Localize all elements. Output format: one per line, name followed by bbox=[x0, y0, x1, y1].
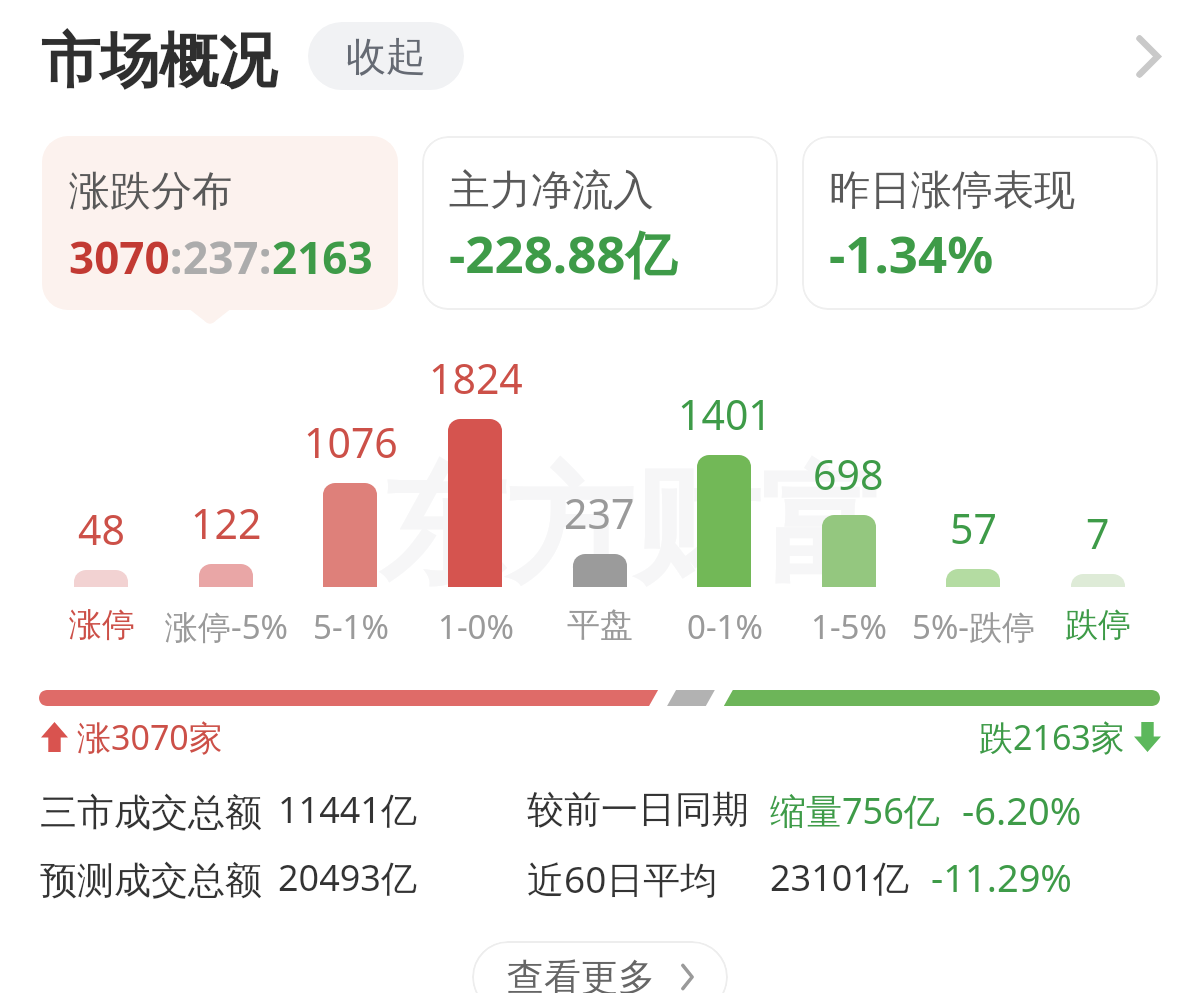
staticText: 涨停 bbox=[69, 604, 135, 646]
button[interactable] bbox=[1035, 350, 1160, 642]
staticText: 3070 bbox=[69, 227, 170, 287]
staticText: 涨3070家 bbox=[77, 714, 223, 760]
staticText: 近60日平均 bbox=[527, 853, 718, 904]
staticText: 主力净流入 bbox=[449, 165, 654, 217]
staticText: 48 bbox=[78, 501, 125, 557]
button[interactable]: 收起 bbox=[308, 22, 464, 90]
button[interactable] bbox=[662, 350, 787, 642]
button[interactable]: Collapse section bbox=[1108, 21, 1188, 101]
staticText: -1.34% bbox=[829, 218, 994, 287]
button[interactable]: 涨跌分布 bbox=[42, 136, 398, 310]
staticText: 2163 bbox=[272, 227, 373, 287]
staticText: : bbox=[170, 227, 183, 287]
staticText: -6.20% bbox=[962, 784, 1082, 836]
staticText: 较前一日同期 bbox=[527, 786, 749, 833]
button[interactable] bbox=[164, 350, 289, 642]
staticText: 涨跌分布 bbox=[69, 166, 233, 218]
staticText: 东方财富 bbox=[379, 448, 887, 598]
button[interactable]: 主力净流入 bbox=[422, 136, 778, 310]
staticText: 三市成交总额 bbox=[40, 789, 262, 836]
staticText: -11.29% bbox=[931, 851, 1072, 903]
button[interactable]: 查看更多 bbox=[472, 941, 728, 993]
button[interactable]: Advance decline ratio bbox=[39, 690, 1160, 706]
staticText: 1076 bbox=[304, 414, 398, 470]
staticText: 20493亿 bbox=[278, 853, 417, 902]
button[interactable] bbox=[413, 350, 538, 642]
staticText: 跌停 bbox=[1065, 604, 1131, 646]
button[interactable] bbox=[39, 350, 164, 642]
staticText: 698 bbox=[813, 446, 884, 502]
staticText: 237 bbox=[183, 227, 259, 287]
staticText: 7 bbox=[1086, 505, 1110, 561]
staticText: : bbox=[259, 227, 272, 287]
staticText: 跌2163家 bbox=[979, 714, 1125, 760]
button[interactable] bbox=[786, 350, 911, 642]
staticText: 平盘 bbox=[567, 604, 633, 646]
button[interactable]: 昨日涨停表现 bbox=[802, 136, 1158, 310]
button[interactable] bbox=[911, 350, 1036, 642]
staticText: 1-0% bbox=[438, 604, 514, 649]
staticText: 5-1% bbox=[313, 604, 389, 649]
staticText: 1824 bbox=[429, 350, 523, 406]
staticText: 预测成交总额 bbox=[40, 857, 262, 904]
staticText: 23101亿 bbox=[770, 853, 909, 902]
staticText: 1401 bbox=[678, 386, 772, 442]
staticText: 缩量756亿 bbox=[770, 786, 940, 835]
staticText: 237 bbox=[564, 485, 635, 541]
button[interactable]: 三市成交总额 bbox=[40, 789, 262, 836]
staticText: 57 bbox=[950, 500, 997, 556]
button[interactable]: 近60日平均 bbox=[527, 853, 718, 904]
staticText: 昨日涨停表现 bbox=[829, 165, 1075, 217]
staticText: -228.88亿 bbox=[449, 218, 677, 288]
staticText: 11441亿 bbox=[278, 785, 417, 834]
staticText: 查看更多 bbox=[507, 954, 655, 993]
staticText: 122 bbox=[191, 495, 262, 551]
staticText: 市场概况 bbox=[41, 24, 277, 98]
staticText: 0-1% bbox=[687, 604, 763, 649]
button[interactable]: 预测成交总额 bbox=[40, 857, 262, 904]
staticText: 5%-跌停 bbox=[912, 604, 1035, 649]
staticText: 涨停-5% bbox=[165, 604, 288, 649]
button[interactable] bbox=[288, 350, 413, 642]
button[interactable] bbox=[537, 350, 662, 642]
button[interactable]: 较前一日同期 bbox=[527, 786, 749, 833]
staticText: 收起 bbox=[346, 31, 426, 81]
staticText: 1-5% bbox=[811, 604, 887, 649]
